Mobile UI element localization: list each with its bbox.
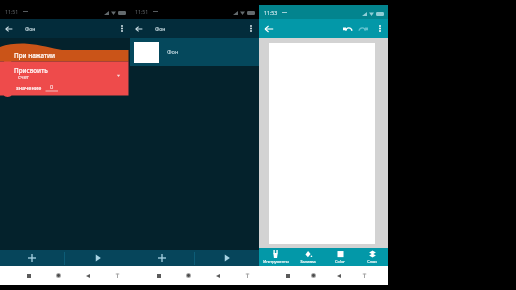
staticText: Color <box>335 259 345 264</box>
button[interactable]: Инструменты <box>259 248 292 266</box>
button[interactable]: More options <box>243 19 259 38</box>
staticText: 0 <box>50 83 54 91</box>
staticText: значение <box>16 84 42 91</box>
staticText: При нажатии <box>14 51 55 60</box>
staticText: Присвоить <box>14 66 48 75</box>
button[interactable]: Redo <box>355 19 371 38</box>
staticText: 11:53 <box>264 9 278 16</box>
button[interactable]: Back <box>212 270 223 281</box>
button[interactable]: Add <box>0 250 64 266</box>
button[interactable]: Back <box>130 19 148 38</box>
button[interactable]: Home <box>308 270 319 281</box>
button[interactable]: Color <box>324 248 356 266</box>
staticText: Фон <box>167 48 179 56</box>
staticText: Заливка <box>300 259 316 264</box>
button[interactable]: Add <box>130 250 194 266</box>
staticText: 11:51 <box>135 8 149 15</box>
staticText: Инструменты <box>263 259 289 264</box>
staticText: Фон <box>25 25 36 32</box>
button[interactable]: Back <box>0 19 18 38</box>
button[interactable]: Hide navigation bar <box>112 270 123 281</box>
button[interactable]: More options <box>114 19 130 38</box>
button[interactable]: Hide navigation bar <box>242 270 253 281</box>
button[interactable]: Слои <box>356 248 388 266</box>
button[interactable]: Back <box>259 19 278 38</box>
button[interactable]: Recents <box>153 270 164 281</box>
button[interactable]: Recents <box>282 270 293 281</box>
button[interactable]: Hide navigation bar <box>359 270 370 281</box>
button[interactable]: Back <box>333 270 344 281</box>
button[interactable]: More options <box>371 19 388 38</box>
button[interactable]: Run <box>195 250 259 266</box>
button[interactable]: Recents <box>23 270 34 281</box>
button[interactable]: Заливка <box>292 248 324 266</box>
staticText: счет <box>18 73 30 80</box>
button[interactable]: Home <box>53 270 64 281</box>
button[interactable]: Undo <box>339 19 355 38</box>
staticText: Фон <box>155 25 166 32</box>
button[interactable]: Run <box>65 250 130 266</box>
button[interactable]: Фон <box>130 38 259 66</box>
staticText: Слои <box>367 259 377 264</box>
staticText: 11:51 <box>5 8 19 15</box>
button[interactable]: Home <box>183 270 194 281</box>
button[interactable]: Back <box>82 270 93 281</box>
